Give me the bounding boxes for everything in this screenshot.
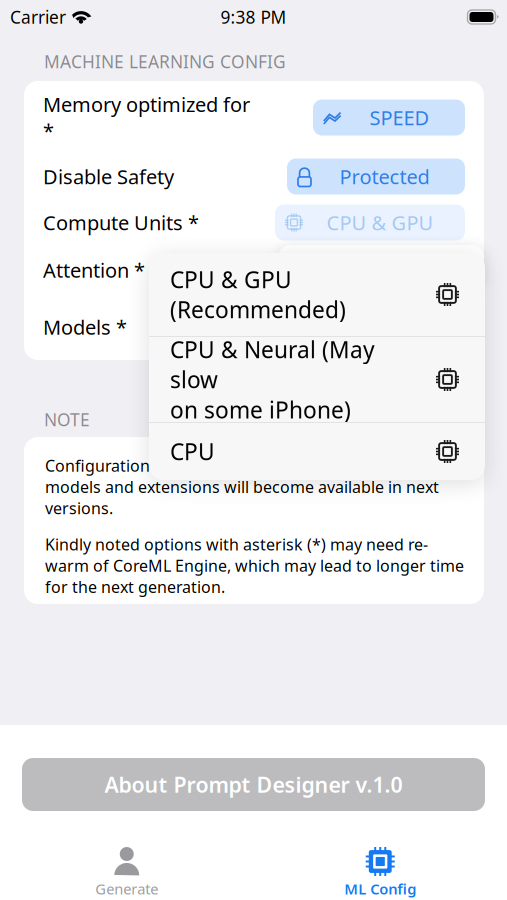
staticText: Generate — [95, 879, 158, 898]
staticText: MACHINE LEARNING CONFIG — [44, 50, 286, 73]
button[interactable]: ML Config — [253, 837, 507, 895]
staticText: Memory optimized for * — [43, 91, 250, 144]
button[interactable]: CPU — [149, 423, 485, 480]
staticText: Protected — [339, 163, 429, 190]
staticText: Carrier — [10, 5, 66, 28]
button[interactable]: SPEED — [313, 99, 465, 135]
staticText: Kindly noted options with asterisk (*) m… — [45, 534, 464, 597]
button[interactable]: CPU & GPU — [275, 204, 465, 240]
button[interactable]: Protected — [287, 158, 465, 194]
staticText: Models * — [43, 314, 127, 340]
staticText: Compute Units * — [43, 209, 199, 236]
staticText: CPU & Neural (May slow on some iPhone) — [170, 334, 375, 425]
staticText: ML Config — [344, 879, 416, 898]
staticText: 9:38 PM — [220, 5, 286, 28]
staticText: Configuration is limited for now. Additi… — [45, 455, 439, 519]
staticText: Attention * — [43, 257, 145, 283]
staticText: NOTE — [44, 408, 90, 431]
staticText: SPEED — [369, 104, 429, 131]
staticText: Disable Safety — [43, 163, 174, 190]
button[interactable]: CPU & Neural (May slow on some iPhone) — [149, 337, 485, 422]
staticText: CPU & GPU (Recommended) — [170, 264, 346, 325]
button[interactable]: About Prompt Designer v.1.0 — [22, 758, 485, 811]
staticText: CPU — [170, 436, 215, 466]
staticText: About Prompt Designer v.1.0 — [104, 770, 402, 799]
button[interactable]: CPU & GPU (Recommended) — [149, 253, 485, 336]
staticText: CPU & GPU — [326, 209, 433, 236]
button[interactable]: Generate — [0, 837, 253, 895]
